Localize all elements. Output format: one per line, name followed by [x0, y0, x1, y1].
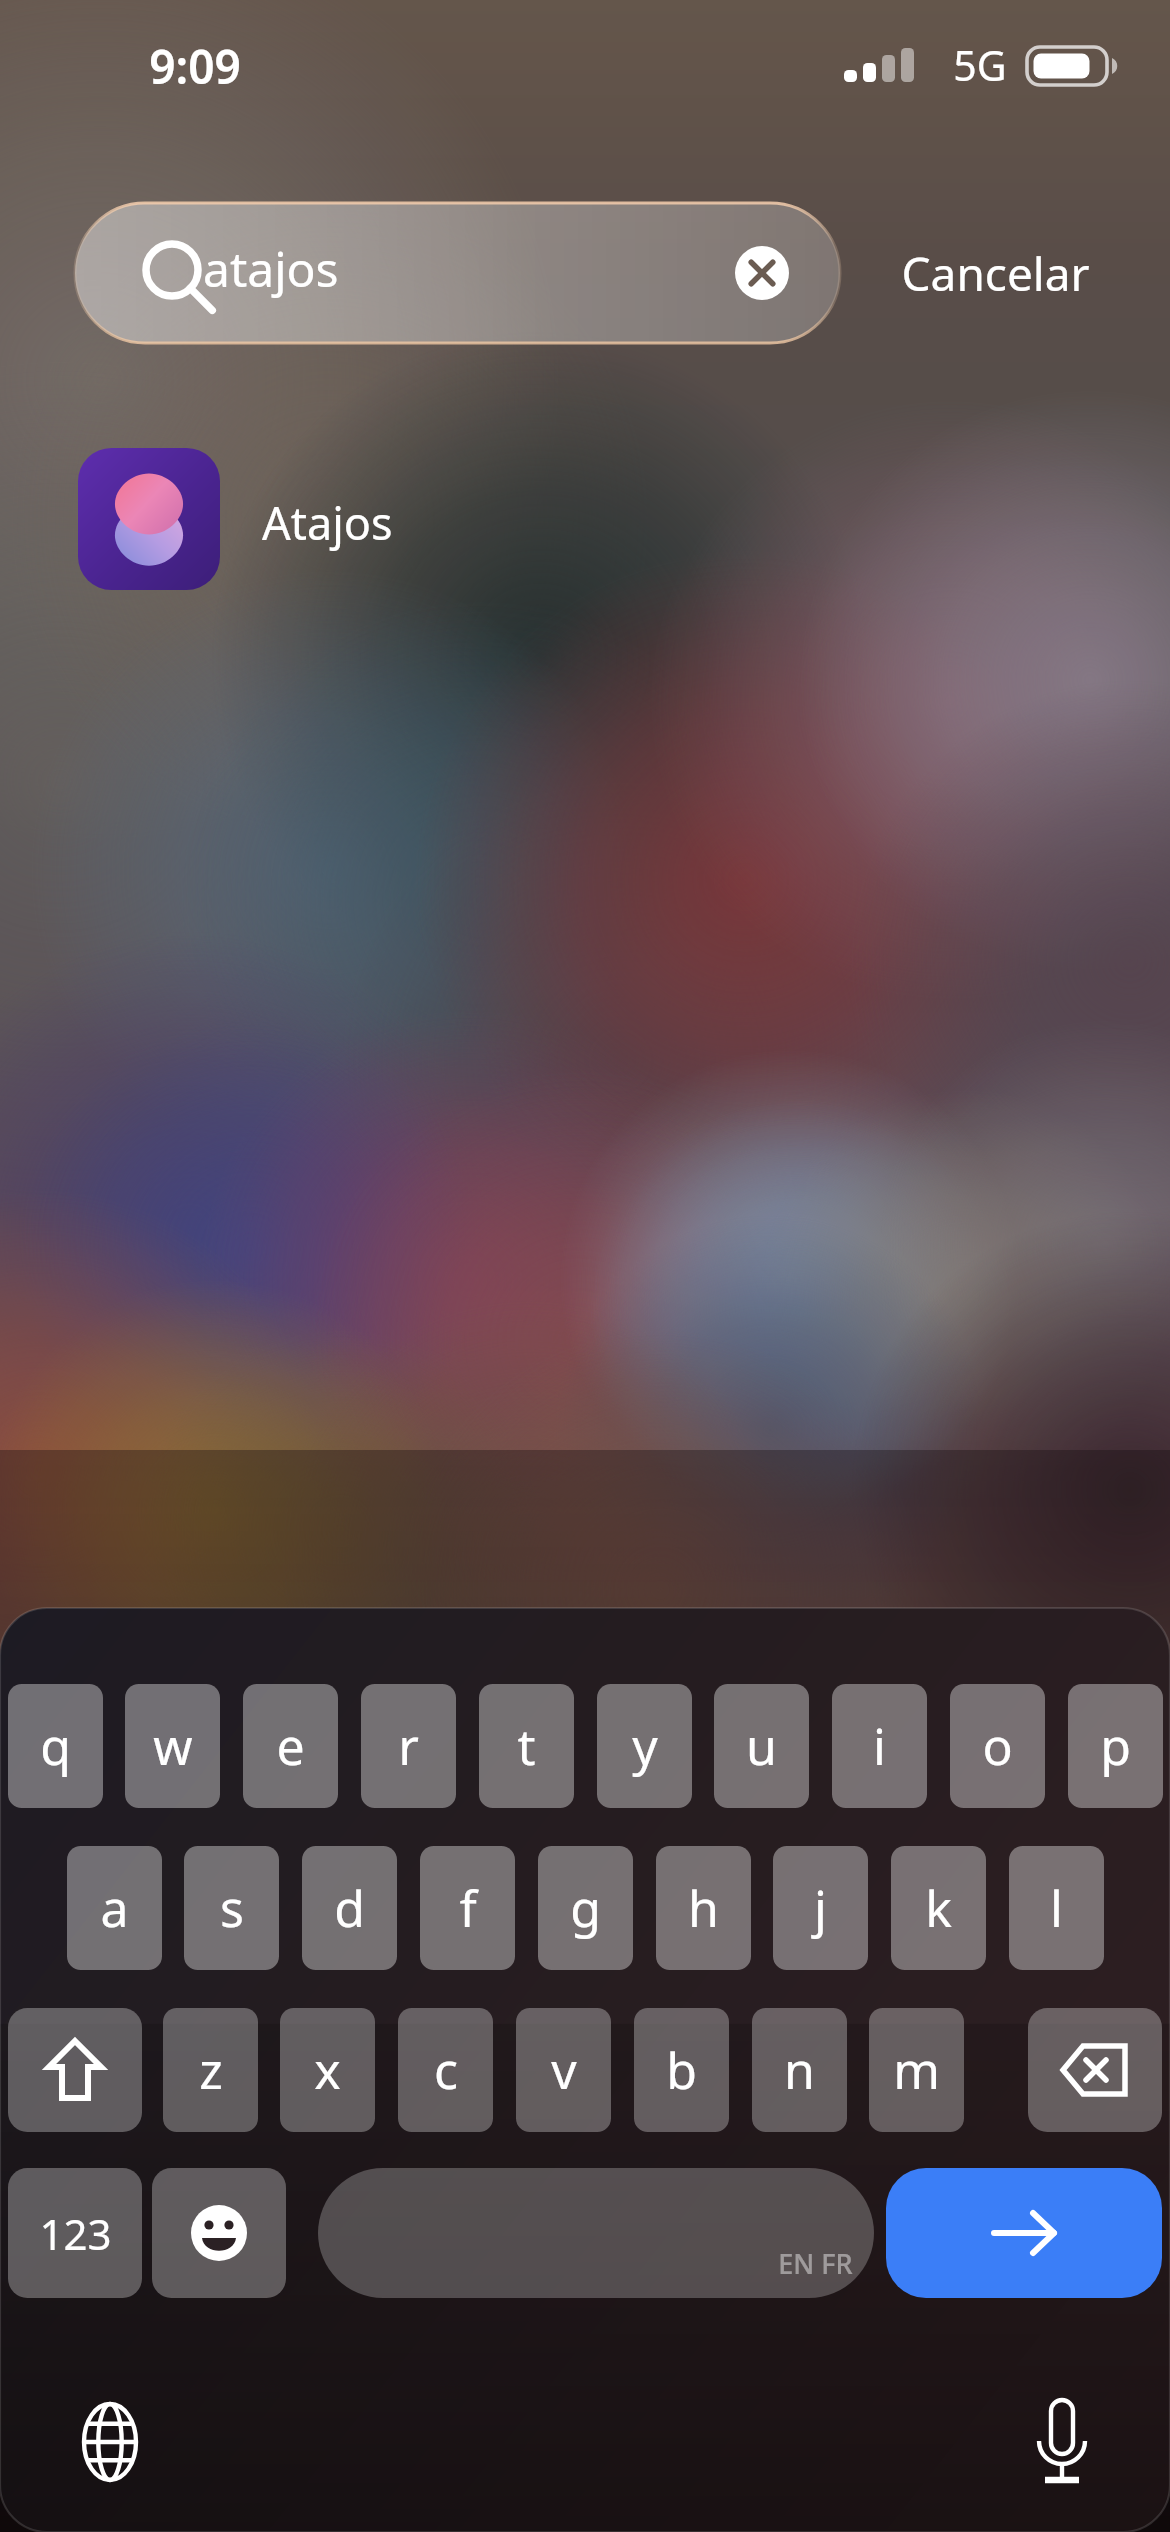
- staticText: 5G: [953, 37, 1007, 93]
- button[interactable]: Cancelar: [880, 236, 1110, 310]
- button[interactable]: o: [950, 1684, 1045, 1808]
- staticText: m: [893, 2036, 940, 2104]
- staticText: i: [873, 1712, 886, 1780]
- staticText: r: [398, 1712, 419, 1780]
- staticText: o: [982, 1712, 1013, 1780]
- staticText: l: [1050, 1874, 1063, 1942]
- staticText: z: [199, 2036, 223, 2104]
- button[interactable]: r: [361, 1684, 456, 1808]
- button[interactable]: Emoji: [152, 2168, 286, 2298]
- staticText: a: [100, 1874, 129, 1942]
- button[interactable]: Numbers: [8, 2168, 142, 2298]
- staticText: y: [632, 1712, 658, 1780]
- button[interactable]: Shift: [8, 2008, 142, 2132]
- staticText: j: [814, 1874, 827, 1942]
- staticText: Atajos: [262, 492, 682, 558]
- staticText: s: [220, 1874, 244, 1942]
- button[interactable]: w: [125, 1684, 220, 1808]
- button[interactable]: h: [656, 1846, 751, 1970]
- staticText: n: [784, 2036, 815, 2104]
- button[interactable]: a: [67, 1846, 162, 1970]
- button[interactable]: y: [597, 1684, 692, 1808]
- button[interactable]: c: [398, 2008, 493, 2132]
- staticText: atajos: [203, 236, 533, 310]
- button[interactable]: [70, 440, 650, 598]
- button[interactable]: j: [773, 1846, 868, 1970]
- staticText: e: [276, 1712, 305, 1780]
- staticText: 9:09: [149, 35, 241, 98]
- button[interactable]: s: [184, 1846, 279, 1970]
- staticText: v: [551, 2036, 577, 2104]
- button[interactable]: g: [538, 1846, 633, 1970]
- staticText: d: [334, 1874, 365, 1942]
- staticText: h: [688, 1874, 719, 1942]
- button[interactable]: q: [8, 1684, 103, 1808]
- button[interactable]: Change keyboard language: [48, 2380, 172, 2504]
- staticText: Cancelar: [901, 242, 1090, 305]
- button[interactable]: v: [516, 2008, 611, 2132]
- staticText: q: [40, 1712, 71, 1780]
- staticText: EN FR: [778, 2245, 853, 2282]
- staticText: b: [666, 2036, 697, 2104]
- button[interactable]: k: [891, 1846, 986, 1970]
- button[interactable]: e: [243, 1684, 338, 1808]
- button[interactable]: u: [714, 1684, 809, 1808]
- staticText: g: [570, 1874, 601, 1942]
- button[interactable]: i: [832, 1684, 927, 1808]
- button[interactable]: l: [1009, 1846, 1104, 1970]
- staticText: 123: [39, 2205, 112, 2262]
- button[interactable]: p: [1068, 1684, 1163, 1808]
- button[interactable]: [75, 203, 840, 343]
- button[interactable]: x: [280, 2008, 375, 2132]
- button[interactable]: Enter: [886, 2168, 1162, 2298]
- button[interactable]: d: [302, 1846, 397, 1970]
- button[interactable]: t: [479, 1684, 574, 1808]
- button[interactable]: n: [752, 2008, 847, 2132]
- staticText: p: [1100, 1712, 1131, 1780]
- staticText: t: [517, 1712, 536, 1780]
- button[interactable]: m: [869, 2008, 964, 2132]
- staticText: c: [434, 2036, 458, 2104]
- button[interactable]: Space: [318, 2168, 874, 2298]
- button[interactable]: Dictation: [1000, 2380, 1124, 2504]
- staticText: x: [314, 2036, 341, 2104]
- staticText: f: [459, 1874, 477, 1942]
- button[interactable]: b: [634, 2008, 729, 2132]
- button[interactable]: Backspace: [1028, 2008, 1162, 2132]
- button[interactable]: z: [163, 2008, 258, 2132]
- button[interactable]: f: [420, 1846, 515, 1970]
- staticText: u: [746, 1712, 777, 1780]
- staticText: k: [925, 1874, 952, 1942]
- staticText: w: [153, 1712, 193, 1780]
